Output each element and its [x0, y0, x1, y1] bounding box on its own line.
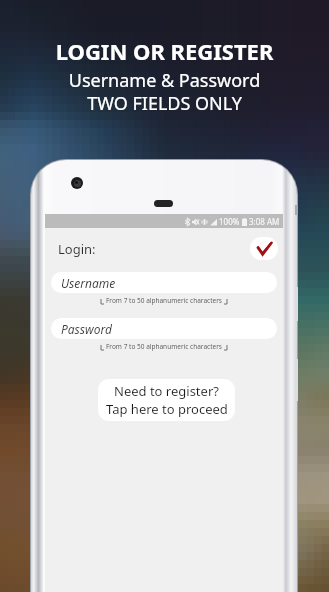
staticText: LOGIN OR REGISTER — [0, 36, 329, 66]
staticText: TWO FIELDS ONLY — [0, 91, 329, 116]
staticText: Username — [61, 275, 116, 291]
staticText: Username & Password — [0, 68, 329, 93]
button[interactable]: Password — [51, 318, 277, 339]
button[interactable]: Submit login — [250, 237, 278, 260]
staticText: Password — [61, 321, 112, 337]
staticText: From 7 to 50 alphanumeric characters — [106, 342, 222, 351]
staticText: Login: — [58, 240, 96, 258]
button[interactable]: Need to register? — [98, 379, 235, 421]
staticText: 100% — [219, 216, 240, 227]
staticText: From 7 to 50 alphanumeric characters — [106, 296, 222, 305]
staticText: 3:08 AM — [249, 216, 280, 227]
staticText: Tap here to proceed — [106, 400, 228, 418]
staticText: Need to register? — [114, 382, 219, 400]
button[interactable]: Username — [51, 272, 277, 293]
